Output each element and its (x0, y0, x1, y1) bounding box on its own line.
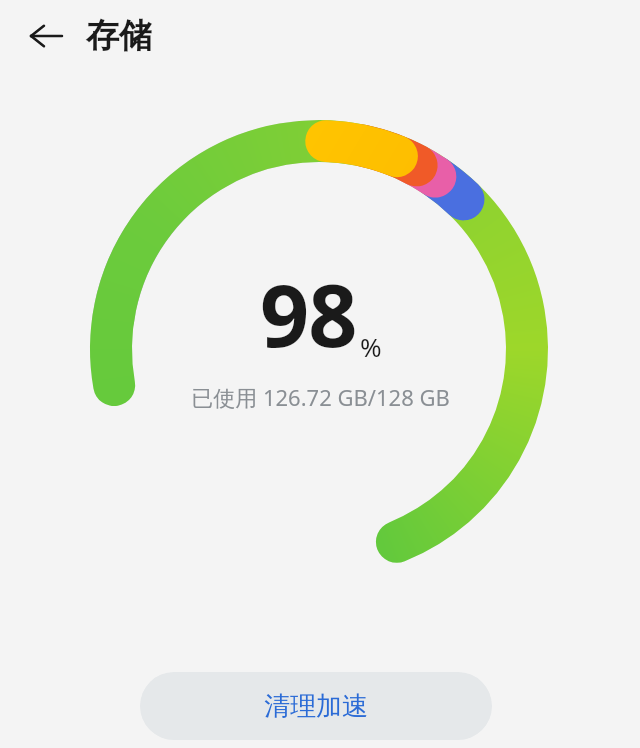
staticText: 已使用 126.72 GB/128 GB (191, 382, 450, 412)
button[interactable]: 清理加速 (140, 672, 492, 740)
staticText: % (360, 329, 382, 364)
staticText: 清理加速 (264, 690, 368, 723)
staticText: 98 (260, 255, 357, 372)
button[interactable]: Back (18, 8, 74, 64)
staticText: 存储 (86, 15, 152, 57)
